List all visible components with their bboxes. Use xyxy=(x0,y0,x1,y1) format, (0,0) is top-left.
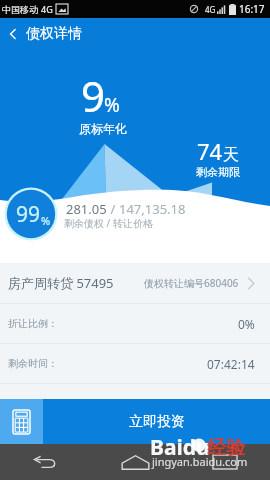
button[interactable]: 最近任务 xyxy=(180,444,270,480)
staticText: 147,135.18 xyxy=(119,200,186,218)
button[interactable]: 主页 xyxy=(90,444,180,480)
staticText: Baidu xyxy=(150,433,210,462)
staticText: 4G xyxy=(205,4,216,15)
staticText: 立即投资 xyxy=(129,413,185,431)
staticText: 债权详情 xyxy=(26,25,82,43)
staticText: jingyan.baidu.com xyxy=(152,454,248,469)
staticText: 原标年化 xyxy=(79,121,127,136)
staticText: 0% xyxy=(238,316,255,332)
staticText: 经验 xyxy=(207,436,245,460)
staticText: 天 xyxy=(223,145,239,165)
staticText: 9 xyxy=(81,67,106,124)
staticText: / xyxy=(107,200,119,218)
button[interactable]: 返回 xyxy=(0,18,26,50)
button[interactable]: 计算器 xyxy=(0,399,43,444)
staticText: 16:17 xyxy=(239,2,265,16)
button[interactable]: 房产周转贷 57495 xyxy=(0,263,270,303)
staticText: 折让比例： xyxy=(8,317,58,330)
staticText: 债权转让编号680406 xyxy=(144,276,239,290)
staticText: 剩余时间： xyxy=(8,357,58,370)
button[interactable]: 返回 xyxy=(0,444,90,480)
staticText: 剩余期限 xyxy=(196,165,240,179)
staticText: % xyxy=(41,213,51,228)
staticText: 281.05 xyxy=(66,200,107,218)
staticText: 99 xyxy=(16,200,41,229)
staticText: 07:42:14 xyxy=(207,356,255,372)
staticText: 剩余债权 / 转让价格 xyxy=(64,216,153,230)
button[interactable]: 立即投资 xyxy=(43,399,270,444)
staticText: 中国移动 xyxy=(2,4,38,15)
staticText: 房产周转贷 57495 xyxy=(8,274,114,292)
staticText: 4G xyxy=(41,3,53,15)
staticText: % xyxy=(104,92,120,118)
staticText: 74 xyxy=(197,136,223,166)
